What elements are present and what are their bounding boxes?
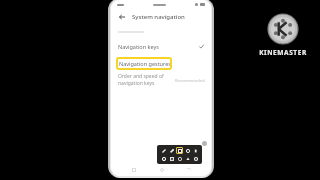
staticText: Order and speed of bbox=[118, 73, 164, 80]
button[interactable]: Back bbox=[183, 164, 194, 175]
button[interactable]: Navigation keys bbox=[111, 40, 211, 53]
button[interactable]: Circle bbox=[184, 147, 191, 154]
button[interactable]: Settings bbox=[192, 155, 199, 162]
staticText: System navigation bbox=[132, 13, 185, 21]
button[interactable]: Pen bbox=[160, 147, 167, 154]
button[interactable]: Highlighter bbox=[168, 147, 175, 154]
button[interactable]: Rectangle bbox=[176, 147, 183, 154]
button[interactable]: Shape bbox=[176, 155, 183, 162]
staticText: navigation keys bbox=[118, 80, 155, 87]
staticText: Recommended bbox=[175, 78, 205, 84]
button[interactable]: Recents bbox=[128, 164, 139, 175]
button[interactable]: Color bbox=[160, 155, 167, 162]
button[interactable]: Navigation gestures bbox=[116, 57, 172, 70]
staticText: KINEMASTER bbox=[259, 48, 307, 57]
button[interactable]: Eraser bbox=[192, 147, 199, 154]
button[interactable]: Fill bbox=[168, 155, 175, 162]
button[interactable]: Bucket bbox=[184, 155, 191, 162]
button[interactable]: Order and speed of bbox=[111, 72, 211, 87]
button[interactable]: Back bbox=[116, 11, 128, 23]
staticText: Navigation gestures bbox=[119, 60, 171, 67]
staticText: Navigation keys bbox=[118, 43, 159, 50]
button[interactable]: Home bbox=[156, 164, 167, 175]
